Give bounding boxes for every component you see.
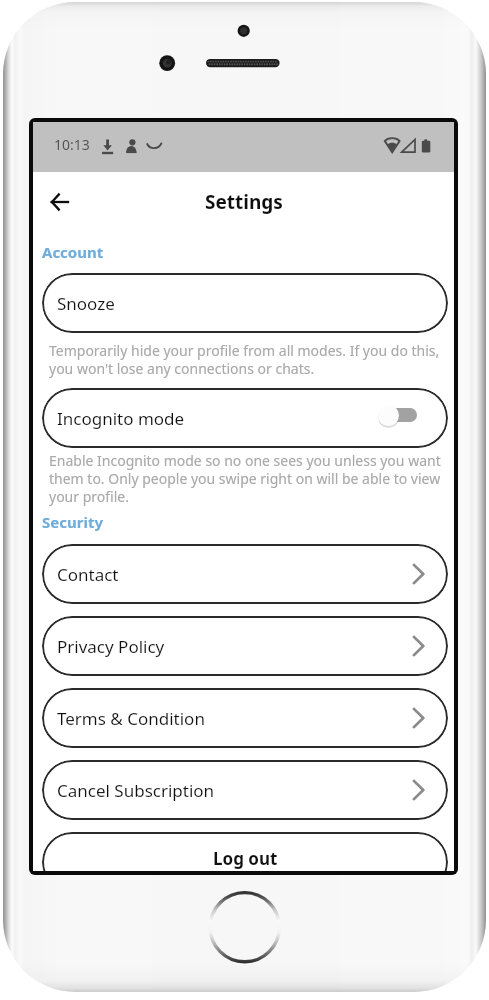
staticText: Snooze xyxy=(57,292,115,315)
staticText: Security xyxy=(42,512,103,532)
staticText: Account xyxy=(42,242,104,262)
button[interactable]: Terms & Condition xyxy=(42,688,448,748)
staticText: Temporarily hide your profile from all m… xyxy=(49,341,443,378)
staticText: Incognito mode xyxy=(57,407,185,430)
button[interactable]: Privacy Policy xyxy=(42,616,448,676)
staticText: Settings xyxy=(205,189,283,215)
staticText: Contact xyxy=(57,563,119,586)
staticText: Terms & Condition xyxy=(57,707,205,730)
button[interactable]: Incognito mode xyxy=(42,388,448,448)
staticText: Cancel Subscription xyxy=(57,779,215,802)
button[interactable]: Back xyxy=(39,182,79,222)
button[interactable]: Snooze xyxy=(42,273,448,333)
staticText: Privacy Policy xyxy=(57,635,165,658)
button[interactable]: Cancel Subscription xyxy=(42,760,448,820)
staticText: Log out xyxy=(213,847,278,870)
staticText: 10:13 xyxy=(54,135,90,154)
button[interactable]: Log out xyxy=(42,832,448,871)
button[interactable]: Contact xyxy=(42,544,448,604)
staticText: Enable Incognito mode so no one sees you… xyxy=(49,451,443,506)
